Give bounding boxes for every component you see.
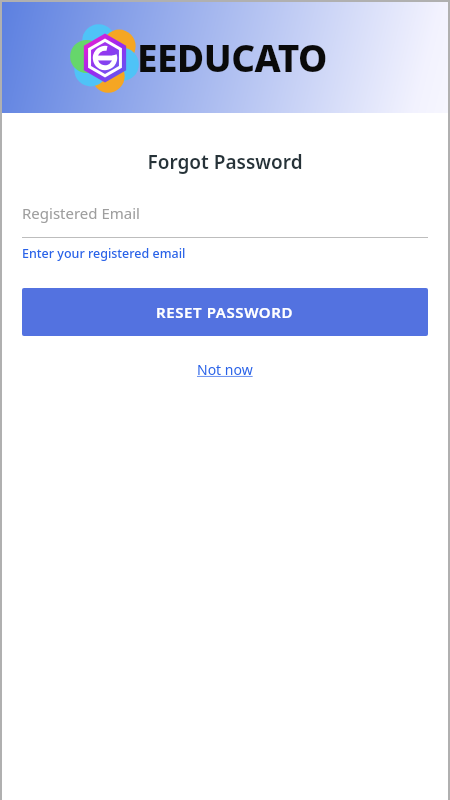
button[interactable]: Registered Email [22, 203, 428, 238]
staticText: Registered Email [22, 203, 140, 223]
staticText: Forgot Password [0, 149, 450, 175]
staticText: Enter your registered email [22, 245, 186, 262]
button[interactable]: Not now [189, 358, 261, 381]
button[interactable]: RESET PASSWORD [22, 288, 428, 336]
staticText: EEDUCATO [137, 32, 327, 82]
staticText: RESET PASSWORD [156, 302, 294, 322]
